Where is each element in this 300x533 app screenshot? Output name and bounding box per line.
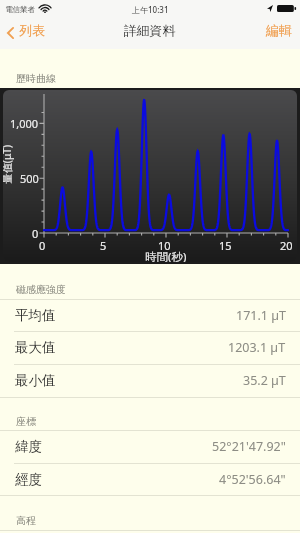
staticText: 量值(μT)	[3, 144, 13, 183]
button[interactable]: 經度	[0, 463, 300, 496]
staticText: 4°52'56.64"	[219, 471, 286, 488]
staticText: 列表	[19, 22, 45, 38]
staticText: 時間(秒)	[145, 249, 187, 262]
staticText: 0	[32, 226, 39, 240]
staticText: 20	[280, 238, 293, 252]
staticText: 緯度	[15, 438, 42, 455]
staticText: 1203.1 µT	[228, 339, 286, 356]
staticText: 座標	[16, 415, 36, 428]
staticText: 500	[20, 171, 39, 185]
staticText: 經度	[15, 471, 42, 488]
staticText: 磁感應強度	[16, 283, 66, 296]
staticText: 35.2 µT	[243, 372, 286, 389]
staticText: 上午10:31	[132, 4, 169, 15]
staticText: 最小值	[15, 372, 56, 389]
staticText: 52°21'47.92"	[212, 438, 286, 455]
staticText: 15	[219, 238, 232, 252]
staticText: 詳細資料	[124, 23, 176, 39]
staticText: 平均值	[15, 307, 56, 324]
staticText: 電信業者	[5, 5, 35, 14]
button[interactable]: 緯度	[0, 430, 300, 463]
staticText: 10	[158, 238, 171, 252]
button[interactable]: 最小值	[0, 364, 300, 397]
button[interactable]: 列表	[0, 19, 55, 47]
staticText: 5	[100, 238, 107, 252]
staticText: 171.1 µT	[236, 307, 286, 324]
staticText: 編輯	[266, 22, 292, 38]
staticText: 0	[39, 238, 46, 252]
staticText: 1,000	[10, 116, 39, 130]
button[interactable]: 最大值	[0, 331, 300, 364]
staticText: 高程	[16, 514, 36, 527]
staticText: 歷時曲線	[16, 72, 56, 85]
staticText: 最大值	[15, 339, 56, 356]
button[interactable]: 平均值	[0, 299, 300, 332]
button[interactable]: 編輯	[256, 19, 300, 47]
